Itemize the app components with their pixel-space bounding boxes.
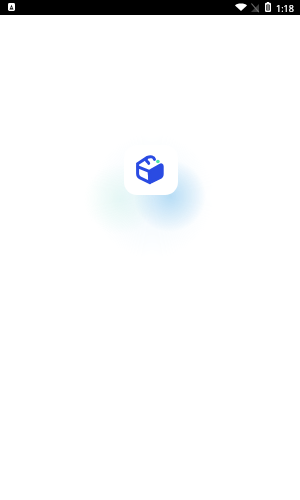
staticText: 1:18 <box>276 2 294 14</box>
